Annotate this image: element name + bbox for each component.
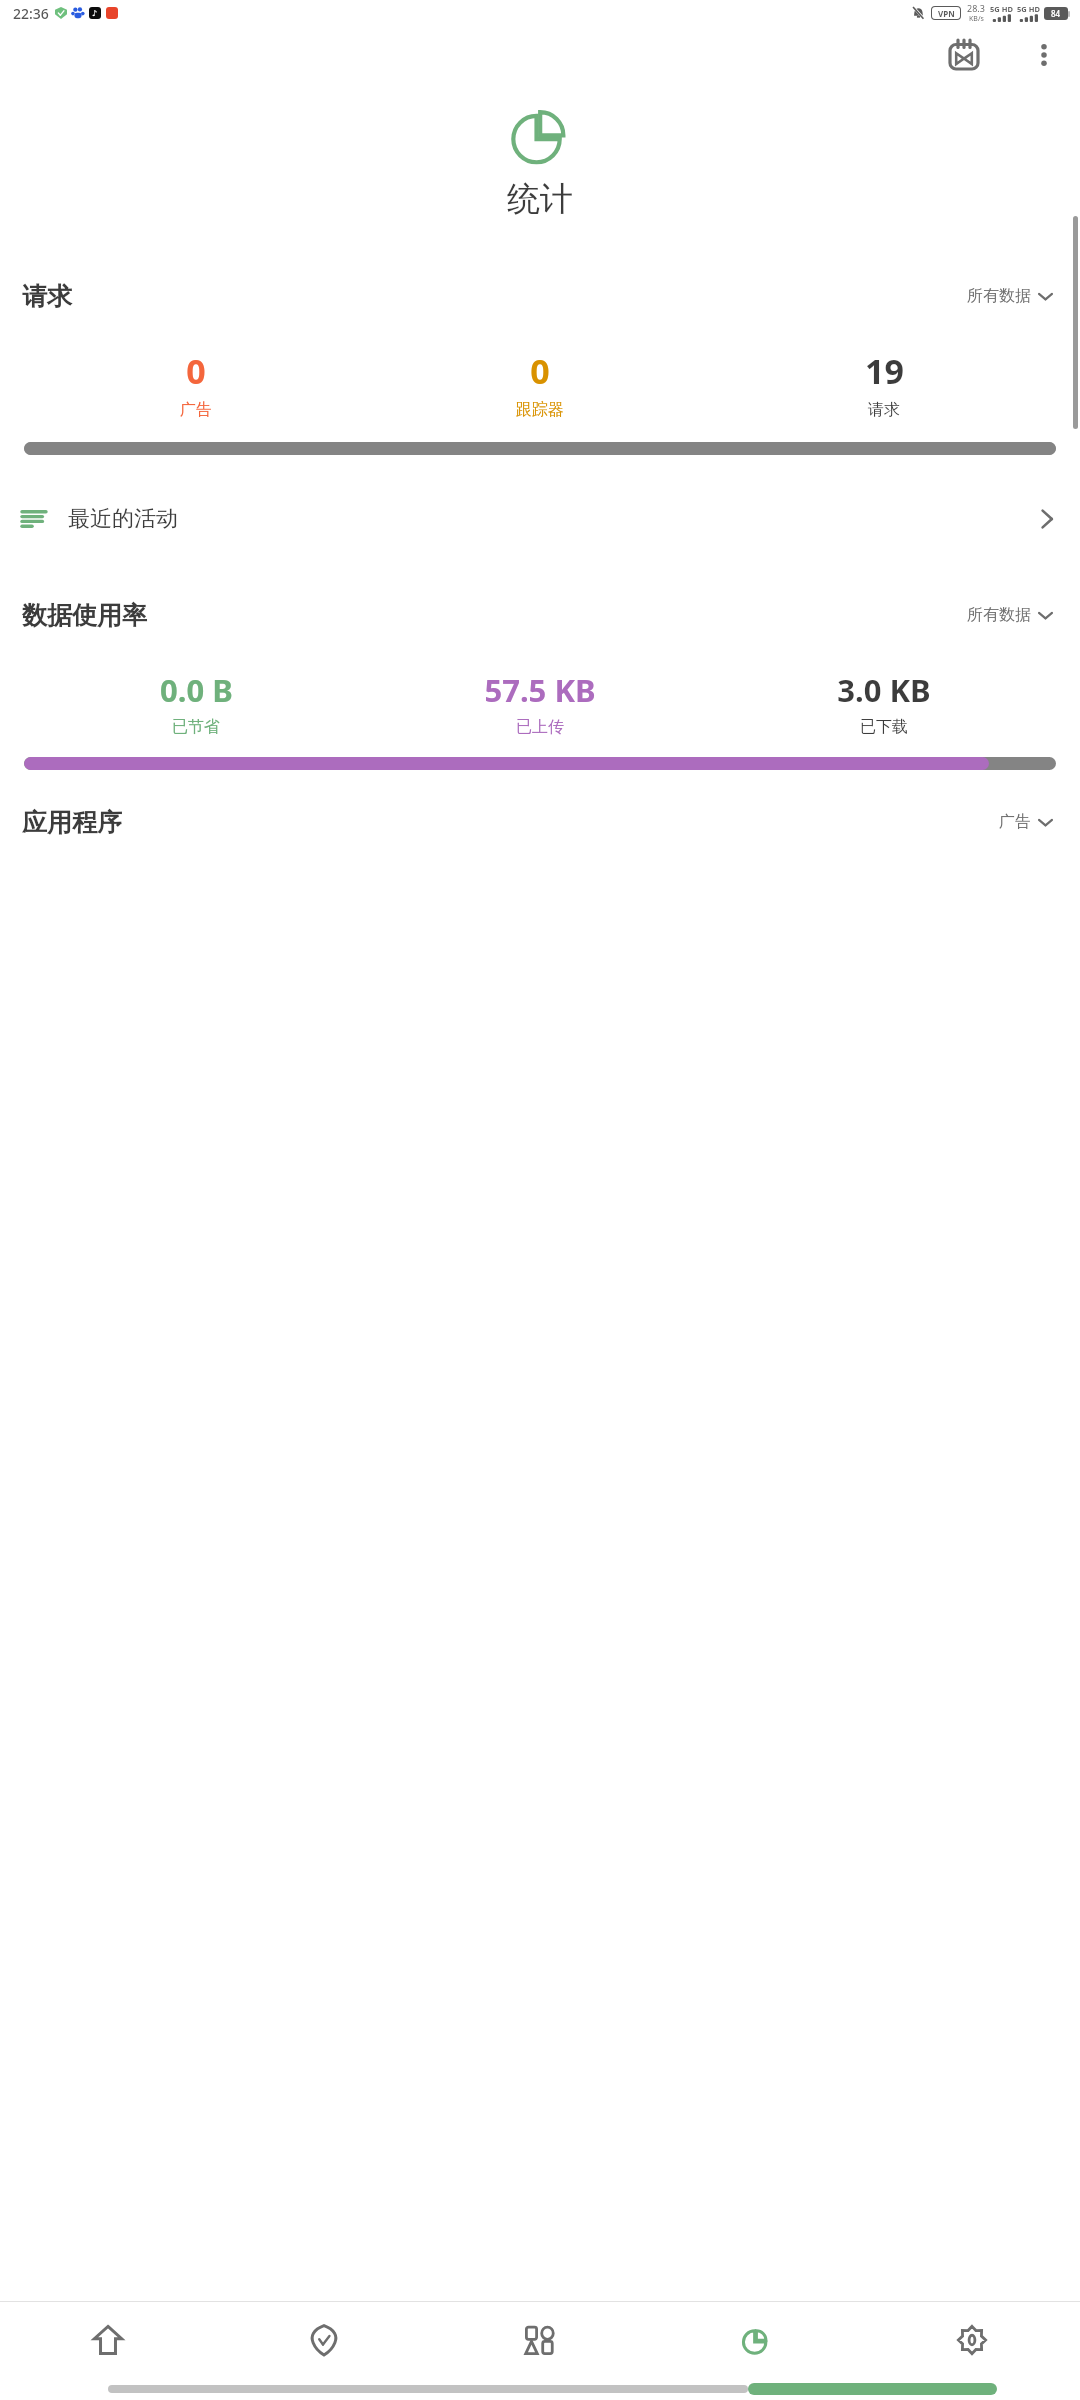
button[interactable]: Home — [0, 2302, 216, 2378]
staticText: 广告 — [180, 400, 212, 420]
staticText: 跟踪器 — [516, 400, 564, 420]
staticText: KB/s — [969, 14, 984, 24]
staticText: 84 — [1051, 8, 1061, 19]
button[interactable]: 3.0 KB — [712, 669, 1056, 737]
button[interactable]: 所有数据 — [961, 599, 1058, 631]
staticText: 已节省 — [172, 717, 220, 737]
button[interactable]: Settings — [864, 2302, 1080, 2378]
button[interactable]: Date range — [938, 29, 990, 81]
staticText: 已上传 — [516, 717, 564, 737]
button[interactable]: 广告 — [993, 806, 1058, 838]
button[interactable]: 0.0 B — [24, 669, 368, 737]
button[interactable]: Apps — [432, 2302, 648, 2378]
staticText: 广告 — [999, 812, 1031, 832]
staticText: 28.3 — [967, 2, 985, 14]
staticText: 5G HD — [990, 4, 1013, 14]
staticText: 所有数据 — [967, 286, 1031, 306]
staticText: 19 — [865, 348, 904, 394]
staticText: 0 — [186, 348, 206, 394]
button[interactable]: Protection — [216, 2302, 432, 2378]
staticText: 统计 — [507, 178, 573, 220]
staticText: 5G HD — [1017, 4, 1040, 14]
staticText: 所有数据 — [967, 605, 1031, 625]
staticText: ♪ — [92, 9, 98, 18]
staticText: 应用程序 — [22, 807, 122, 838]
staticText: 最近的活动 — [68, 505, 178, 533]
staticText: 已下载 — [860, 717, 908, 737]
staticText: 0.0 B — [160, 669, 233, 711]
staticText: 57.5 KB — [484, 669, 596, 711]
button[interactable]: 最近的活动 — [0, 497, 1080, 541]
button[interactable]: 0 — [24, 348, 368, 420]
staticText: VPN — [938, 8, 955, 19]
button[interactable]: 0 — [368, 348, 712, 420]
staticText: 3.0 KB — [837, 669, 931, 711]
button[interactable]: Statistics — [648, 2302, 864, 2378]
button[interactable]: 所有数据 — [961, 280, 1058, 312]
staticText: 22:36 — [13, 4, 49, 23]
button[interactable]: More options — [1018, 29, 1070, 81]
button[interactable]: 57.5 KB — [368, 669, 712, 737]
button[interactable]: 19 — [712, 348, 1056, 420]
staticText: 请求 — [868, 400, 900, 420]
staticText: 请求 — [22, 281, 72, 312]
staticText: 0 — [530, 348, 550, 394]
staticText: 数据使用率 — [22, 600, 147, 631]
